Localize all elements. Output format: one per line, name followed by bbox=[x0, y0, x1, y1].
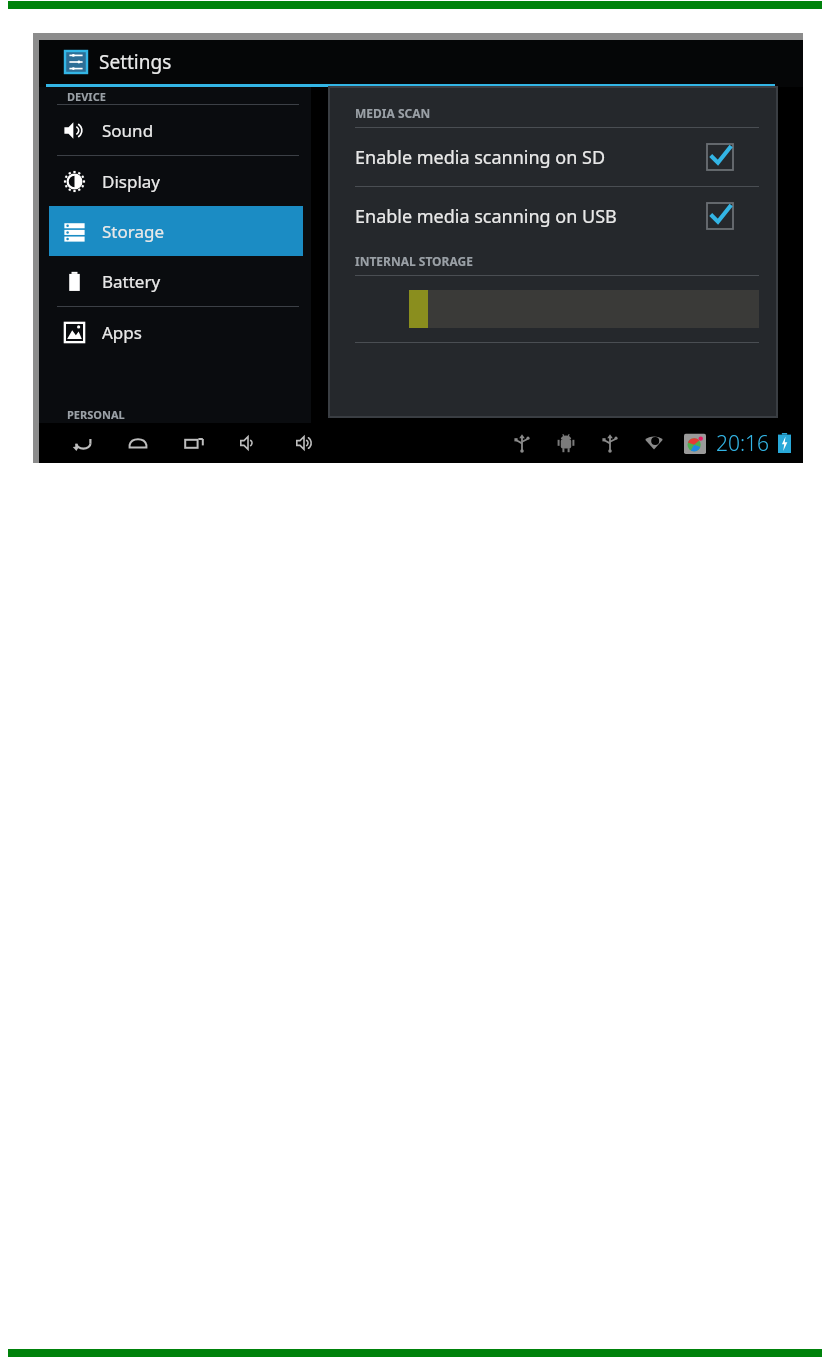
button[interactable]: Display bbox=[49, 156, 303, 206]
button[interactable]: Sound bbox=[49, 105, 303, 155]
button[interactable]: Volume down bbox=[235, 428, 265, 458]
staticText: Enable media scanning on USB bbox=[355, 204, 697, 229]
staticText: DEVICE bbox=[67, 89, 106, 104]
staticText: Display bbox=[102, 170, 160, 193]
staticText: Apps bbox=[102, 321, 142, 344]
button[interactable]: Recent apps bbox=[179, 428, 209, 458]
staticText: 20:16 bbox=[716, 429, 770, 458]
other: Toggle Enable media scanning on USB bbox=[707, 203, 733, 229]
staticText: Sound bbox=[102, 119, 154, 142]
staticText: Battery bbox=[102, 270, 161, 293]
other: Toggle Enable media scanning on SD bbox=[707, 144, 733, 170]
staticText: Enable media scanning on SD bbox=[355, 145, 697, 170]
button[interactable]: Storage bbox=[49, 206, 303, 256]
button[interactable]: Back bbox=[67, 428, 97, 458]
staticText: MEDIA SCAN bbox=[355, 105, 431, 121]
button[interactable]: Enable media scanning on SD bbox=[355, 128, 759, 186]
staticText: PERSONAL bbox=[67, 407, 125, 422]
staticText: Storage bbox=[102, 220, 165, 243]
button[interactable]: Apps bbox=[49, 307, 303, 357]
staticText: Settings bbox=[99, 49, 172, 75]
staticText: INTERNAL STORAGE bbox=[355, 253, 473, 269]
button[interactable]: Home bbox=[123, 428, 153, 458]
button[interactable]: Battery bbox=[49, 256, 303, 306]
button[interactable]: Volume up bbox=[291, 428, 321, 458]
button[interactable]: Enable media scanning on USB bbox=[355, 187, 759, 245]
